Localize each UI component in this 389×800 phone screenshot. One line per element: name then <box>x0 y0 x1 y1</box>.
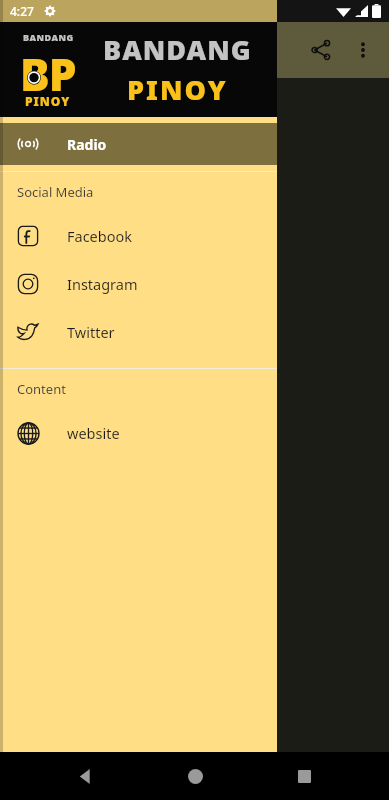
staticText: BANDANG <box>103 31 252 68</box>
button[interactable]: Share <box>299 28 343 72</box>
button[interactable]: Home <box>171 752 219 800</box>
button[interactable]: Radio <box>0 123 277 165</box>
staticText: Facebook <box>67 226 133 246</box>
staticText: Content <box>17 380 66 398</box>
button[interactable]: Recent apps <box>280 752 328 800</box>
button[interactable]: More options <box>343 30 383 70</box>
staticText: Social Media <box>17 183 94 201</box>
button[interactable]: website <box>0 409 277 457</box>
button[interactable]: Instagram <box>0 260 277 308</box>
staticText: PINOY <box>25 93 71 109</box>
button[interactable]: Back <box>61 752 109 800</box>
staticText: BP <box>20 44 76 92</box>
staticText: website <box>67 423 120 443</box>
staticText: 4:27 <box>10 3 34 19</box>
staticText: Instagram <box>67 274 138 294</box>
staticText: PINOY <box>127 71 228 108</box>
button[interactable]: Facebook <box>0 212 277 260</box>
button[interactable]: Twitter <box>0 308 277 356</box>
staticText: Twitter <box>67 322 115 342</box>
staticText: Radio <box>67 135 107 154</box>
staticText: BANDANG <box>23 31 74 43</box>
